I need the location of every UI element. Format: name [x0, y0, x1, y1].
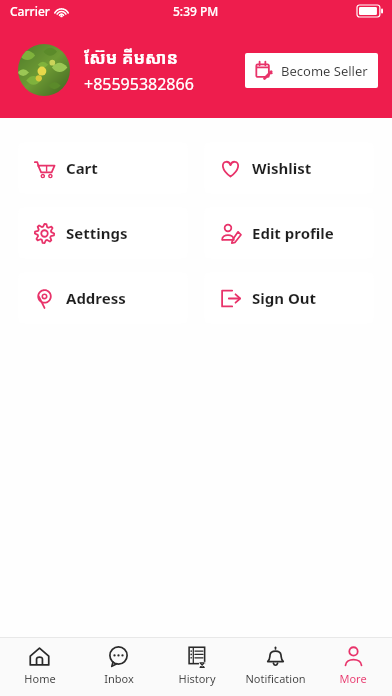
button[interactable]: Address [18, 272, 188, 324]
button[interactable]: Sign Out [204, 272, 374, 324]
button[interactable]: Home [0, 638, 79, 696]
staticText: Notification [245, 671, 306, 686]
staticText: Carrier [10, 3, 50, 19]
button[interactable]: Edit profile [204, 207, 374, 259]
button[interactable]: Become Seller [245, 53, 378, 88]
button[interactable]: Inbox [79, 638, 158, 696]
staticText: Address [66, 288, 126, 308]
button[interactable]: Settings [18, 207, 188, 259]
button[interactable]: Wishlist [204, 142, 374, 194]
staticText: Home [24, 671, 56, 686]
staticText: 5:39 PM [173, 3, 219, 19]
button[interactable]: History [158, 638, 236, 696]
staticText: +85595382866 [84, 73, 194, 95]
button[interactable]: More [314, 638, 392, 696]
button[interactable]: Cart [18, 142, 188, 194]
staticText: Cart [66, 158, 98, 178]
staticText: Sign Out [252, 288, 317, 308]
staticText: ស៊ែម គីមសាន [84, 46, 178, 69]
staticText: History [178, 671, 216, 686]
staticText: Wishlist [252, 158, 312, 178]
staticText: Settings [66, 223, 128, 243]
staticText: More [339, 671, 367, 686]
staticText: Edit profile [252, 223, 334, 243]
staticText: Become Seller [281, 62, 368, 80]
staticText: Inbox [104, 671, 134, 686]
button[interactable]: Notification [236, 638, 314, 696]
